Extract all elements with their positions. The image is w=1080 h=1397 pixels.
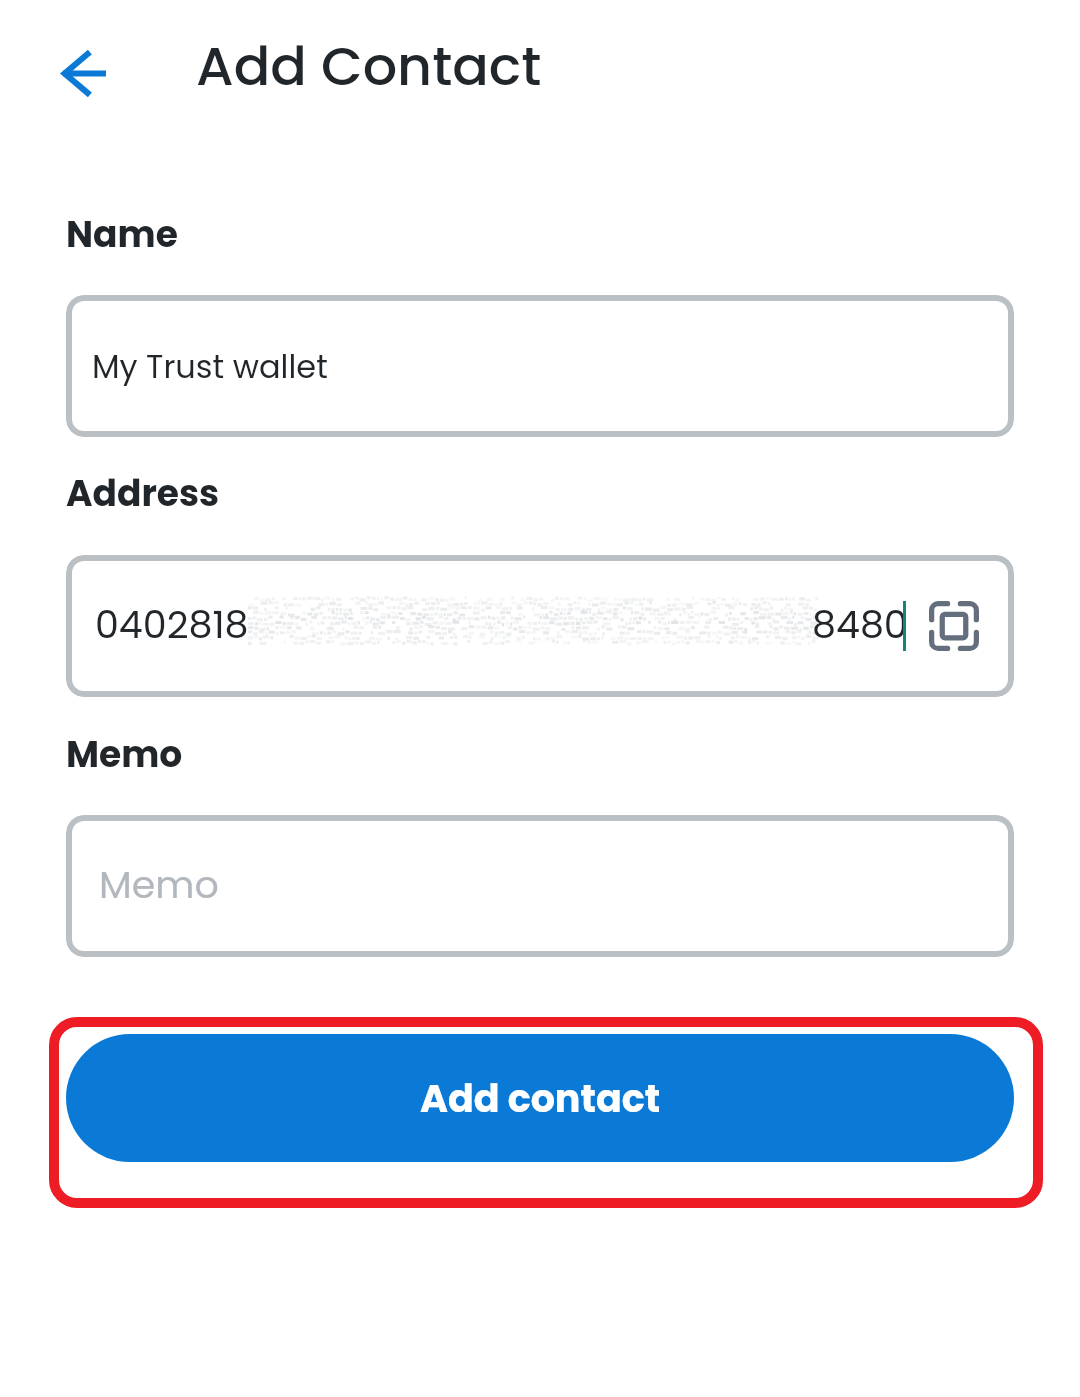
staticText: Add Contact bbox=[196, 28, 542, 104]
staticText: 0402818 bbox=[95, 598, 249, 651]
button[interactable]: My Trust wallet bbox=[66, 295, 1014, 437]
button[interactable]: 0402818 bbox=[66, 555, 1014, 697]
button[interactable]: Add contact bbox=[66, 1034, 1014, 1162]
button[interactable]: Back bbox=[38, 28, 128, 118]
button[interactable]: Scan QR code bbox=[915, 587, 993, 665]
staticText: My Trust wallet bbox=[92, 344, 328, 389]
staticText: 8480 bbox=[812, 598, 908, 651]
staticText: Memo bbox=[66, 729, 183, 779]
staticText: Address bbox=[66, 468, 220, 518]
button[interactable]: Memo bbox=[66, 815, 1014, 957]
staticText: Memo bbox=[99, 858, 219, 911]
staticText: Name bbox=[66, 209, 178, 259]
staticText: Add contact bbox=[420, 1072, 661, 1125]
